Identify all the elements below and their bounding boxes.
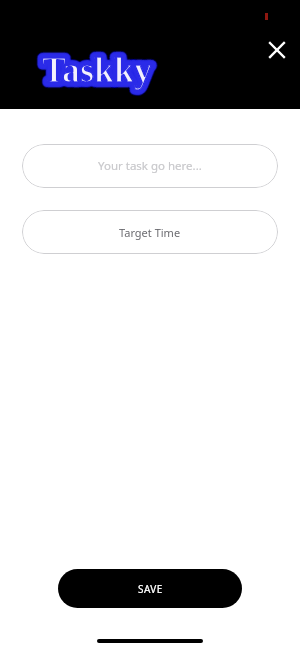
button[interactable]: SAVE [58, 569, 242, 608]
button[interactable]: Your task go here... [22, 144, 278, 188]
staticText: Target Time [119, 225, 181, 240]
button[interactable]: Close [262, 35, 291, 64]
button[interactable]: Target Time [22, 210, 278, 254]
staticText: SAVE [138, 582, 163, 596]
staticText: Your task go here... [98, 158, 202, 174]
